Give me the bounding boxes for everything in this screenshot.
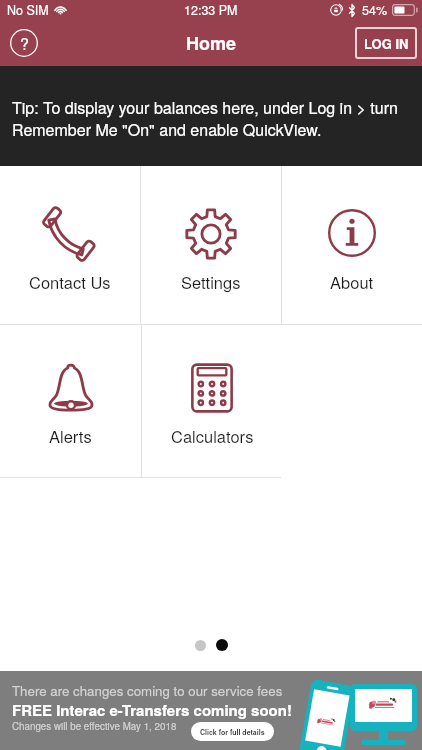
button[interactable]: About: [282, 166, 422, 324]
button[interactable]: There are changes coming to our service …: [0, 671, 422, 750]
button[interactable]: Alerts: [0, 325, 141, 477]
staticText: There are changes coming to our service …: [12, 681, 283, 700]
staticText: Calculators: [171, 424, 254, 448]
button[interactable]: Click for full details: [191, 722, 274, 741]
staticText: Changes will be effective May 1, 2018: [12, 719, 177, 733]
button[interactable]: Settings: [141, 166, 281, 324]
staticText: FREE Interac e-Transfers coming soon!: [12, 699, 292, 720]
staticText: Tip: To display your balances here, unde…: [12, 96, 410, 140]
staticText: Contact Us: [29, 270, 111, 294]
staticText: About: [330, 270, 374, 294]
staticText: Alerts: [49, 424, 92, 448]
staticText: ?: [20, 32, 29, 55]
staticText: Settings: [181, 270, 241, 294]
button[interactable]: LOG IN: [355, 27, 417, 59]
button[interactable]: Calculators: [142, 325, 282, 477]
staticText: 54%: [362, 1, 388, 19]
staticText: LOG IN: [364, 34, 409, 53]
staticText: Home: [186, 30, 237, 56]
staticText: No SIM: [7, 1, 49, 19]
button[interactable]: Contact Us: [0, 166, 140, 324]
staticText: Click for full details: [200, 727, 265, 737]
staticText: 12:33 PM: [184, 1, 238, 19]
button[interactable]: Help: [10, 29, 38, 57]
